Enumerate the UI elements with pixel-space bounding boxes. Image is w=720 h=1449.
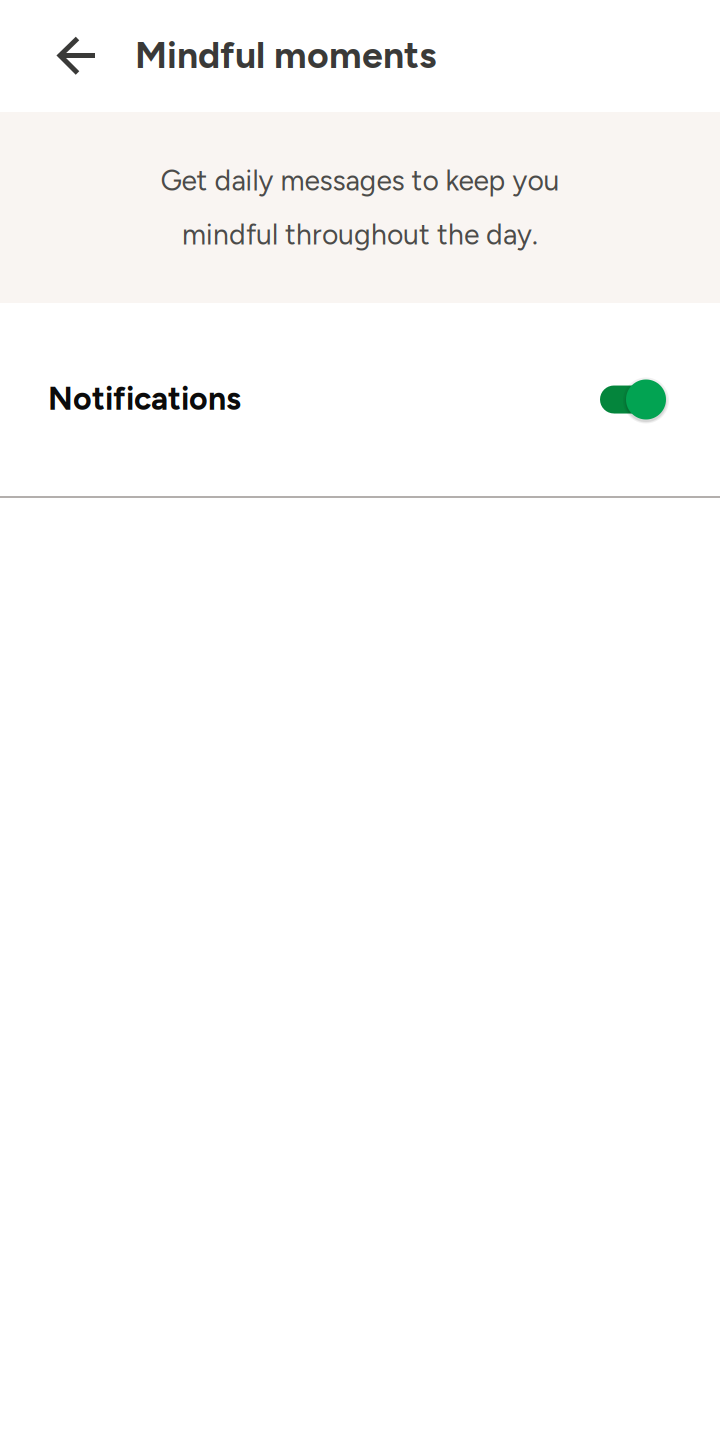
- button[interactable]: Notifications: [0, 303, 720, 496]
- button[interactable]: Back: [0, 0, 100, 112]
- staticText: Mindful moments: [135, 33, 436, 77]
- staticText: Get daily messages to keep you: [160, 163, 559, 197]
- staticText: Notifications: [48, 379, 241, 418]
- button[interactable]: Notifications, on: [600, 376, 666, 422]
- staticText: mindful throughout the day.: [182, 217, 538, 251]
